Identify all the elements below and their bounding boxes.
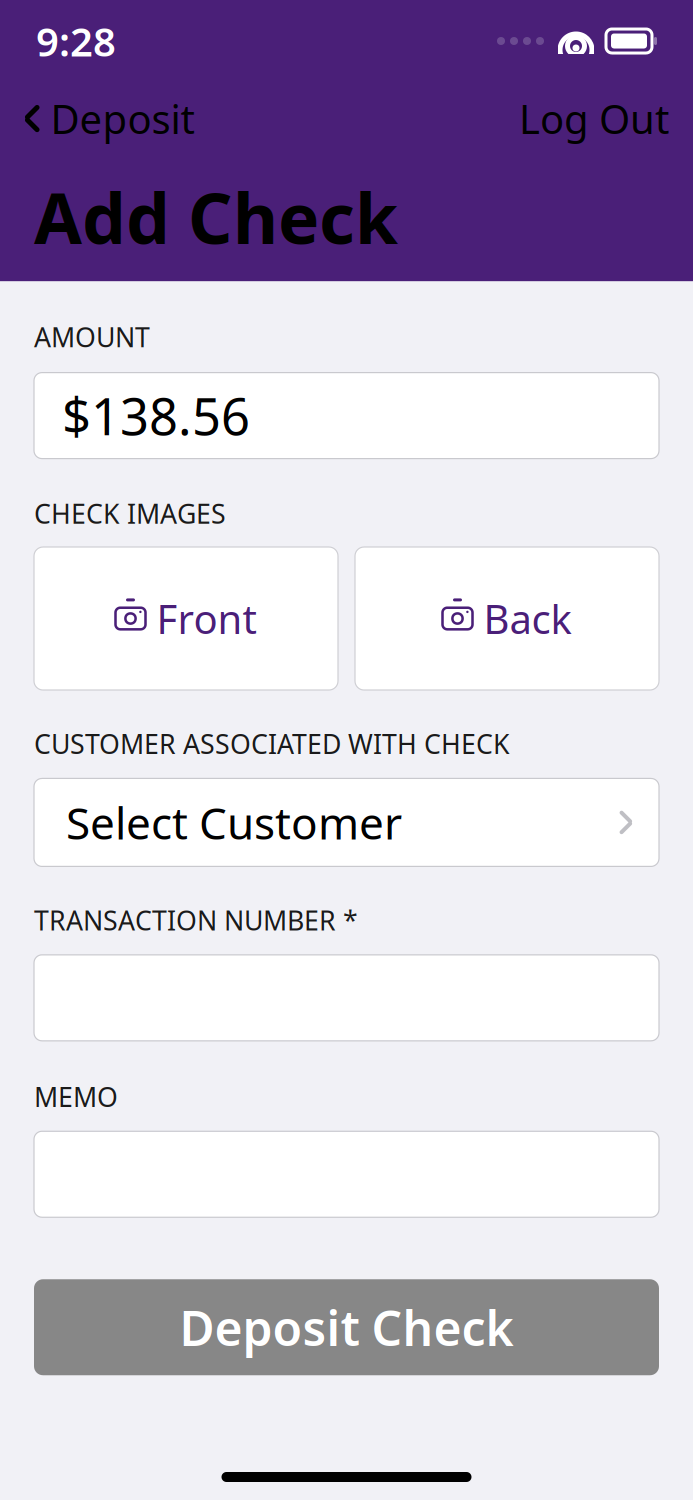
staticText: Deposit Check: [179, 1295, 513, 1359]
staticText: Select Customer: [66, 793, 402, 852]
staticText: Deposit: [50, 92, 194, 145]
staticText: AMOUNT: [34, 319, 150, 355]
button[interactable]: Front: [34, 547, 338, 690]
button[interactable]: Deposit Check: [34, 1279, 659, 1375]
staticText: Add Check: [34, 171, 398, 263]
staticText: Front: [156, 592, 256, 645]
button[interactable]: Deposit: [24, 86, 194, 151]
staticText: TRANSACTION NUMBER *: [34, 902, 358, 938]
staticText: Back: [483, 592, 571, 645]
staticText: CUSTOMER ASSOCIATED WITH CHECK: [34, 726, 510, 761]
staticText: 9:28: [36, 14, 116, 67]
button[interactable]: Back: [355, 547, 659, 690]
staticText: Log Out: [519, 92, 669, 145]
staticText: CHECK IMAGES: [34, 496, 226, 531]
button[interactable]: Select Customer: [34, 778, 659, 866]
staticText: MEMO: [34, 1079, 118, 1114]
button[interactable]: Log Out: [519, 86, 669, 151]
staticText: $138.56: [62, 382, 250, 449]
